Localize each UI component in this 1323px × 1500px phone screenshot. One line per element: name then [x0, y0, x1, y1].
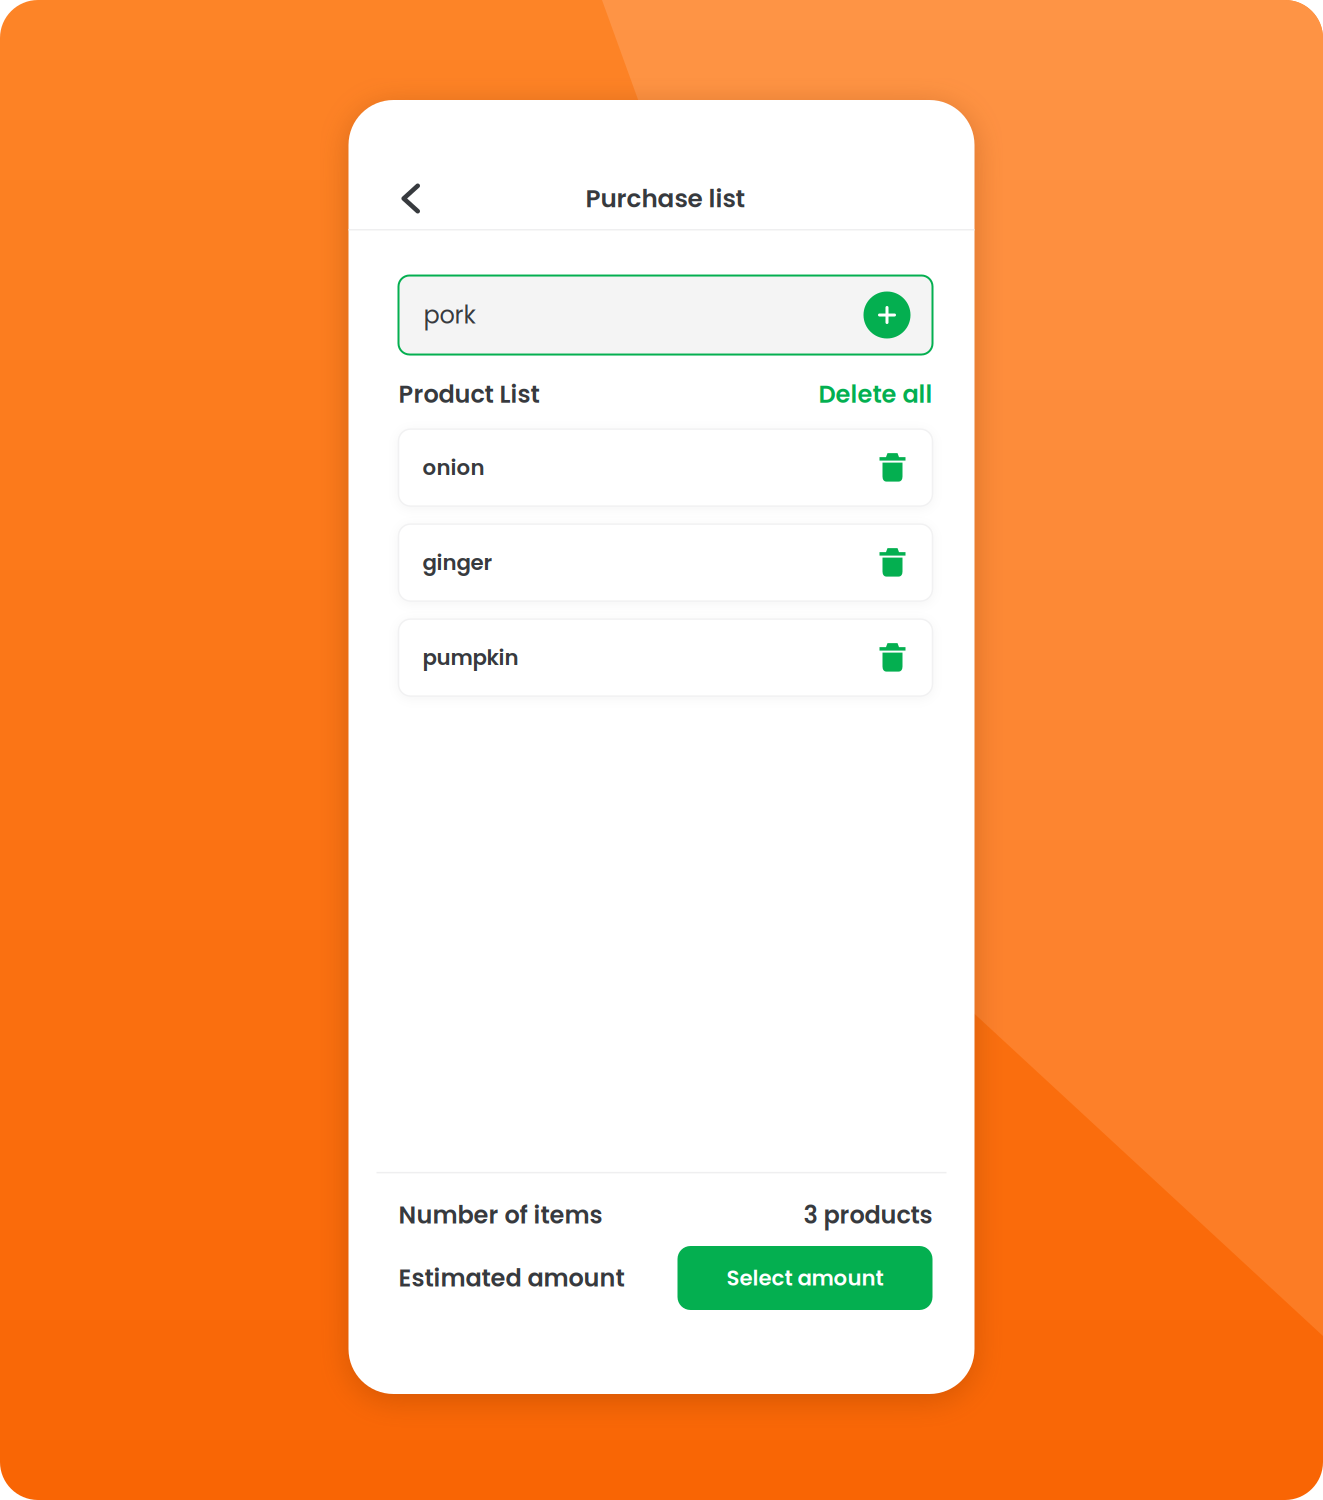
- button[interactable]: Back: [348, 166, 444, 230]
- staticText: 3 products: [803, 1198, 932, 1232]
- staticText: Purchase list: [585, 181, 745, 216]
- button[interactable]: Select amount: [677, 1246, 932, 1310]
- staticText: Select amount: [726, 1263, 883, 1293]
- staticText: Estimated amount: [398, 1261, 624, 1295]
- button[interactable]: Delete all: [818, 377, 932, 411]
- staticText: ginger: [422, 548, 492, 578]
- button[interactable]: ginger: [398, 524, 932, 601]
- staticText: Delete all: [818, 377, 932, 411]
- button[interactable]: onion: [398, 429, 932, 506]
- staticText: onion: [422, 453, 484, 483]
- staticText: pork: [423, 298, 475, 332]
- staticText: Product List: [398, 377, 539, 411]
- button[interactable]: pumpkin: [398, 619, 932, 696]
- staticText: Number of items: [398, 1198, 602, 1232]
- staticText: pumpkin: [422, 643, 518, 673]
- button[interactable]: Add product: [863, 291, 910, 338]
